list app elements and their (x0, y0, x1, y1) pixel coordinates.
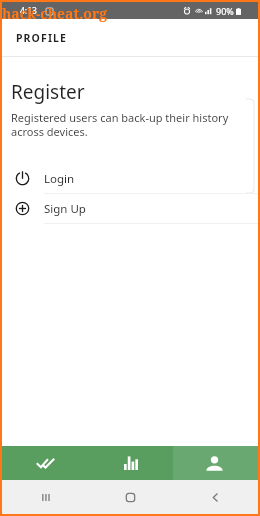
button[interactable]: Home (88, 480, 173, 514)
button[interactable]: Recents (2, 480, 88, 514)
staticText: Register (11, 79, 85, 105)
button[interactable]: Back (173, 480, 258, 514)
button[interactable]: Login (2, 164, 258, 194)
button[interactable]: PROFILE (2, 19, 258, 57)
staticText: 90% (216, 5, 234, 17)
staticText: Sign Up (44, 201, 86, 217)
staticText: Registered users can back-up their histo… (11, 110, 242, 140)
button[interactable]: Tasks (2, 446, 88, 480)
staticText: 4:13 (20, 5, 37, 17)
button[interactable]: Profile (173, 446, 258, 480)
button[interactable]: Sign Up (2, 194, 258, 224)
staticText: hack-cheat.org (2, 4, 108, 23)
staticText: PROFILE (16, 31, 68, 45)
button[interactable]: Statistics (88, 446, 173, 480)
staticText: Login (44, 171, 75, 187)
